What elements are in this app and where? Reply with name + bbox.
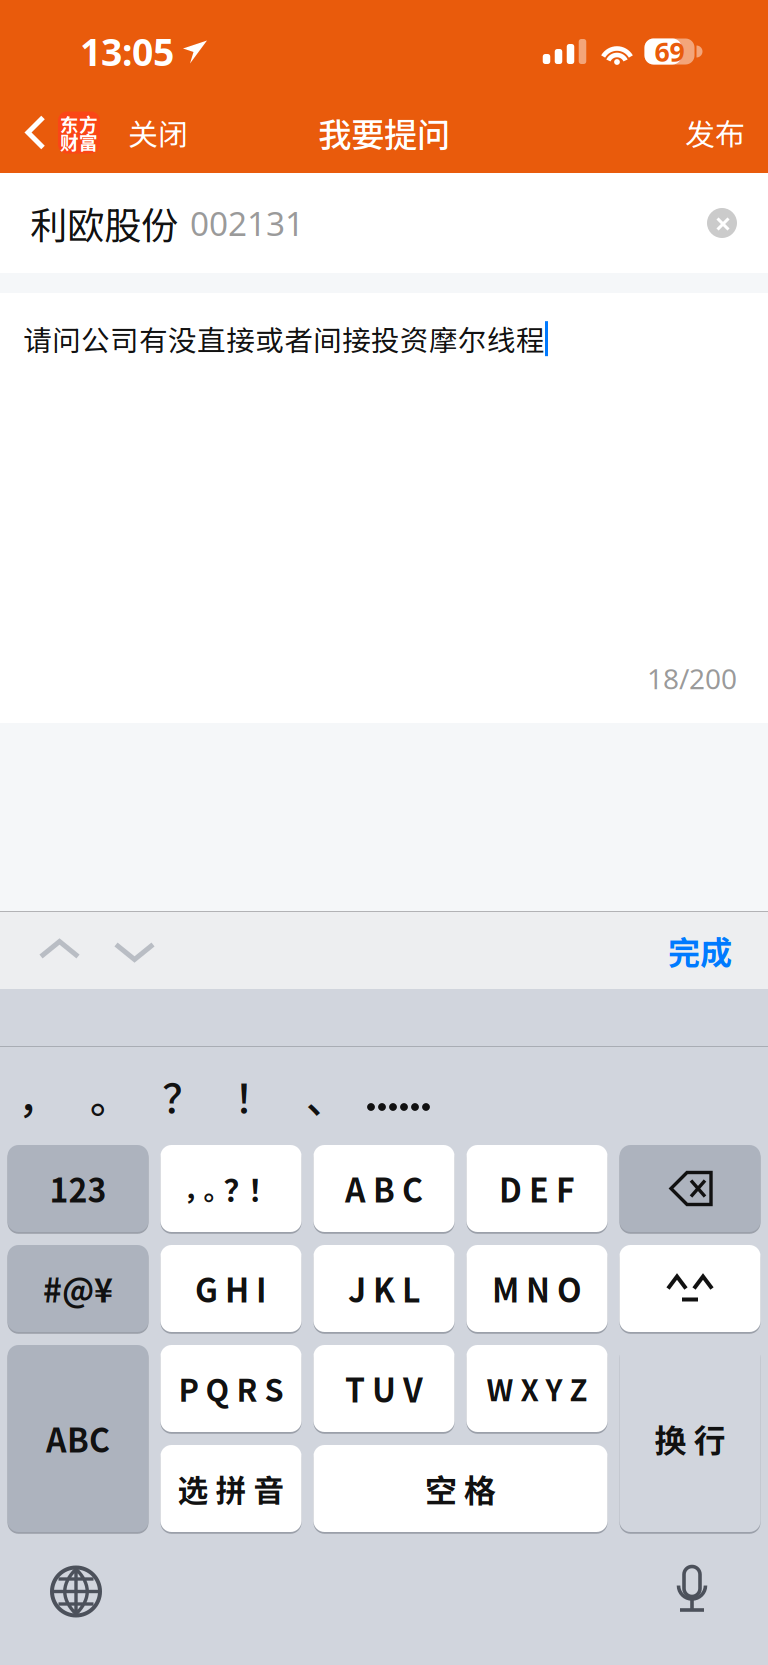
staticText: 18/200 xyxy=(647,660,737,697)
staticText: 69 xyxy=(654,34,684,69)
staticText: ！ xyxy=(247,1166,278,1211)
staticText: 空 格 xyxy=(425,1465,496,1512)
staticText: T U V xyxy=(345,1365,423,1412)
staticText: ？ xyxy=(223,1166,254,1211)
button[interactable]: 换 行 xyxy=(619,1345,760,1532)
staticText: 请问公司有没直接或者间接投资摩尔线程 xyxy=(23,318,545,359)
staticText: ， xyxy=(18,1067,58,1125)
button[interactable]: T U V xyxy=(313,1345,454,1432)
staticText: 东方 xyxy=(60,110,98,137)
button[interactable]: 下一项 xyxy=(97,912,172,989)
staticText: 换 行 xyxy=(654,1415,725,1462)
staticText: P Q R S xyxy=(178,1366,283,1411)
button[interactable]: M N O xyxy=(466,1245,607,1332)
button[interactable]: 删除 xyxy=(619,1145,760,1232)
staticText: #@¥ xyxy=(43,1265,113,1312)
button[interactable]: 123 xyxy=(7,1145,148,1232)
button[interactable]: 标点 xyxy=(160,1145,301,1232)
staticText: ！ xyxy=(234,1067,274,1125)
button[interactable]: 省略号 xyxy=(362,1047,434,1145)
staticText: 123 xyxy=(49,1165,106,1212)
button[interactable]: ？ xyxy=(146,1047,218,1145)
staticText: A B C xyxy=(345,1165,423,1212)
staticText: M N O xyxy=(492,1265,582,1312)
staticText: ABC xyxy=(46,1415,110,1462)
button[interactable]: 发布 xyxy=(667,92,763,173)
button[interactable]: #@¥ xyxy=(7,1245,148,1332)
staticText: ， xyxy=(183,1169,210,1208)
staticText: 利欧股份 xyxy=(30,196,178,250)
staticText: 。 xyxy=(90,1067,130,1125)
button[interactable]: 完成 xyxy=(650,912,750,989)
button[interactable]: G H I xyxy=(160,1245,301,1332)
button[interactable]: ABC xyxy=(7,1345,148,1532)
staticText: 、 xyxy=(306,1067,346,1125)
staticText: 我要提问 xyxy=(318,108,450,157)
staticText: 财富 xyxy=(60,128,98,155)
staticText: 关闭 xyxy=(128,111,188,154)
staticText: 选 拼 音 xyxy=(177,1466,284,1511)
staticText: J K L xyxy=(348,1265,420,1312)
staticText: 。 xyxy=(203,1169,230,1208)
staticText: 完成 xyxy=(668,927,732,974)
button[interactable]: 选 拼 音 xyxy=(160,1445,301,1532)
button[interactable]: ， xyxy=(2,1047,74,1145)
staticText: 002131 xyxy=(190,201,304,245)
button[interactable]: 、 xyxy=(290,1047,362,1145)
button[interactable]: 语音输入 xyxy=(652,1551,732,1631)
staticText: 13:05 xyxy=(80,27,174,76)
button[interactable]: 关闭 xyxy=(104,92,204,173)
button[interactable]: 。 xyxy=(74,1047,146,1145)
button[interactable]: 返回东方财富 xyxy=(0,92,104,173)
button[interactable]: J K L xyxy=(313,1245,454,1332)
staticText: ？ xyxy=(162,1067,202,1125)
button[interactable]: 颜文字 xyxy=(619,1245,760,1332)
button[interactable]: 切换键盘 xyxy=(36,1551,116,1631)
button[interactable]: W X Y Z xyxy=(466,1345,607,1432)
button[interactable]: ！ xyxy=(218,1047,290,1145)
staticText: W X Y Z xyxy=(486,1367,587,1410)
button[interactable]: 空 格 xyxy=(313,1445,607,1532)
button[interactable]: 上一项 xyxy=(22,912,97,989)
staticText: D E F xyxy=(499,1165,575,1212)
staticText: 发布 xyxy=(685,111,745,154)
button[interactable]: D E F xyxy=(466,1145,607,1232)
button[interactable]: 清除 xyxy=(698,194,746,252)
button[interactable]: A B C xyxy=(313,1145,454,1232)
button[interactable]: P Q R S xyxy=(160,1345,301,1432)
staticText: G H I xyxy=(195,1265,267,1312)
